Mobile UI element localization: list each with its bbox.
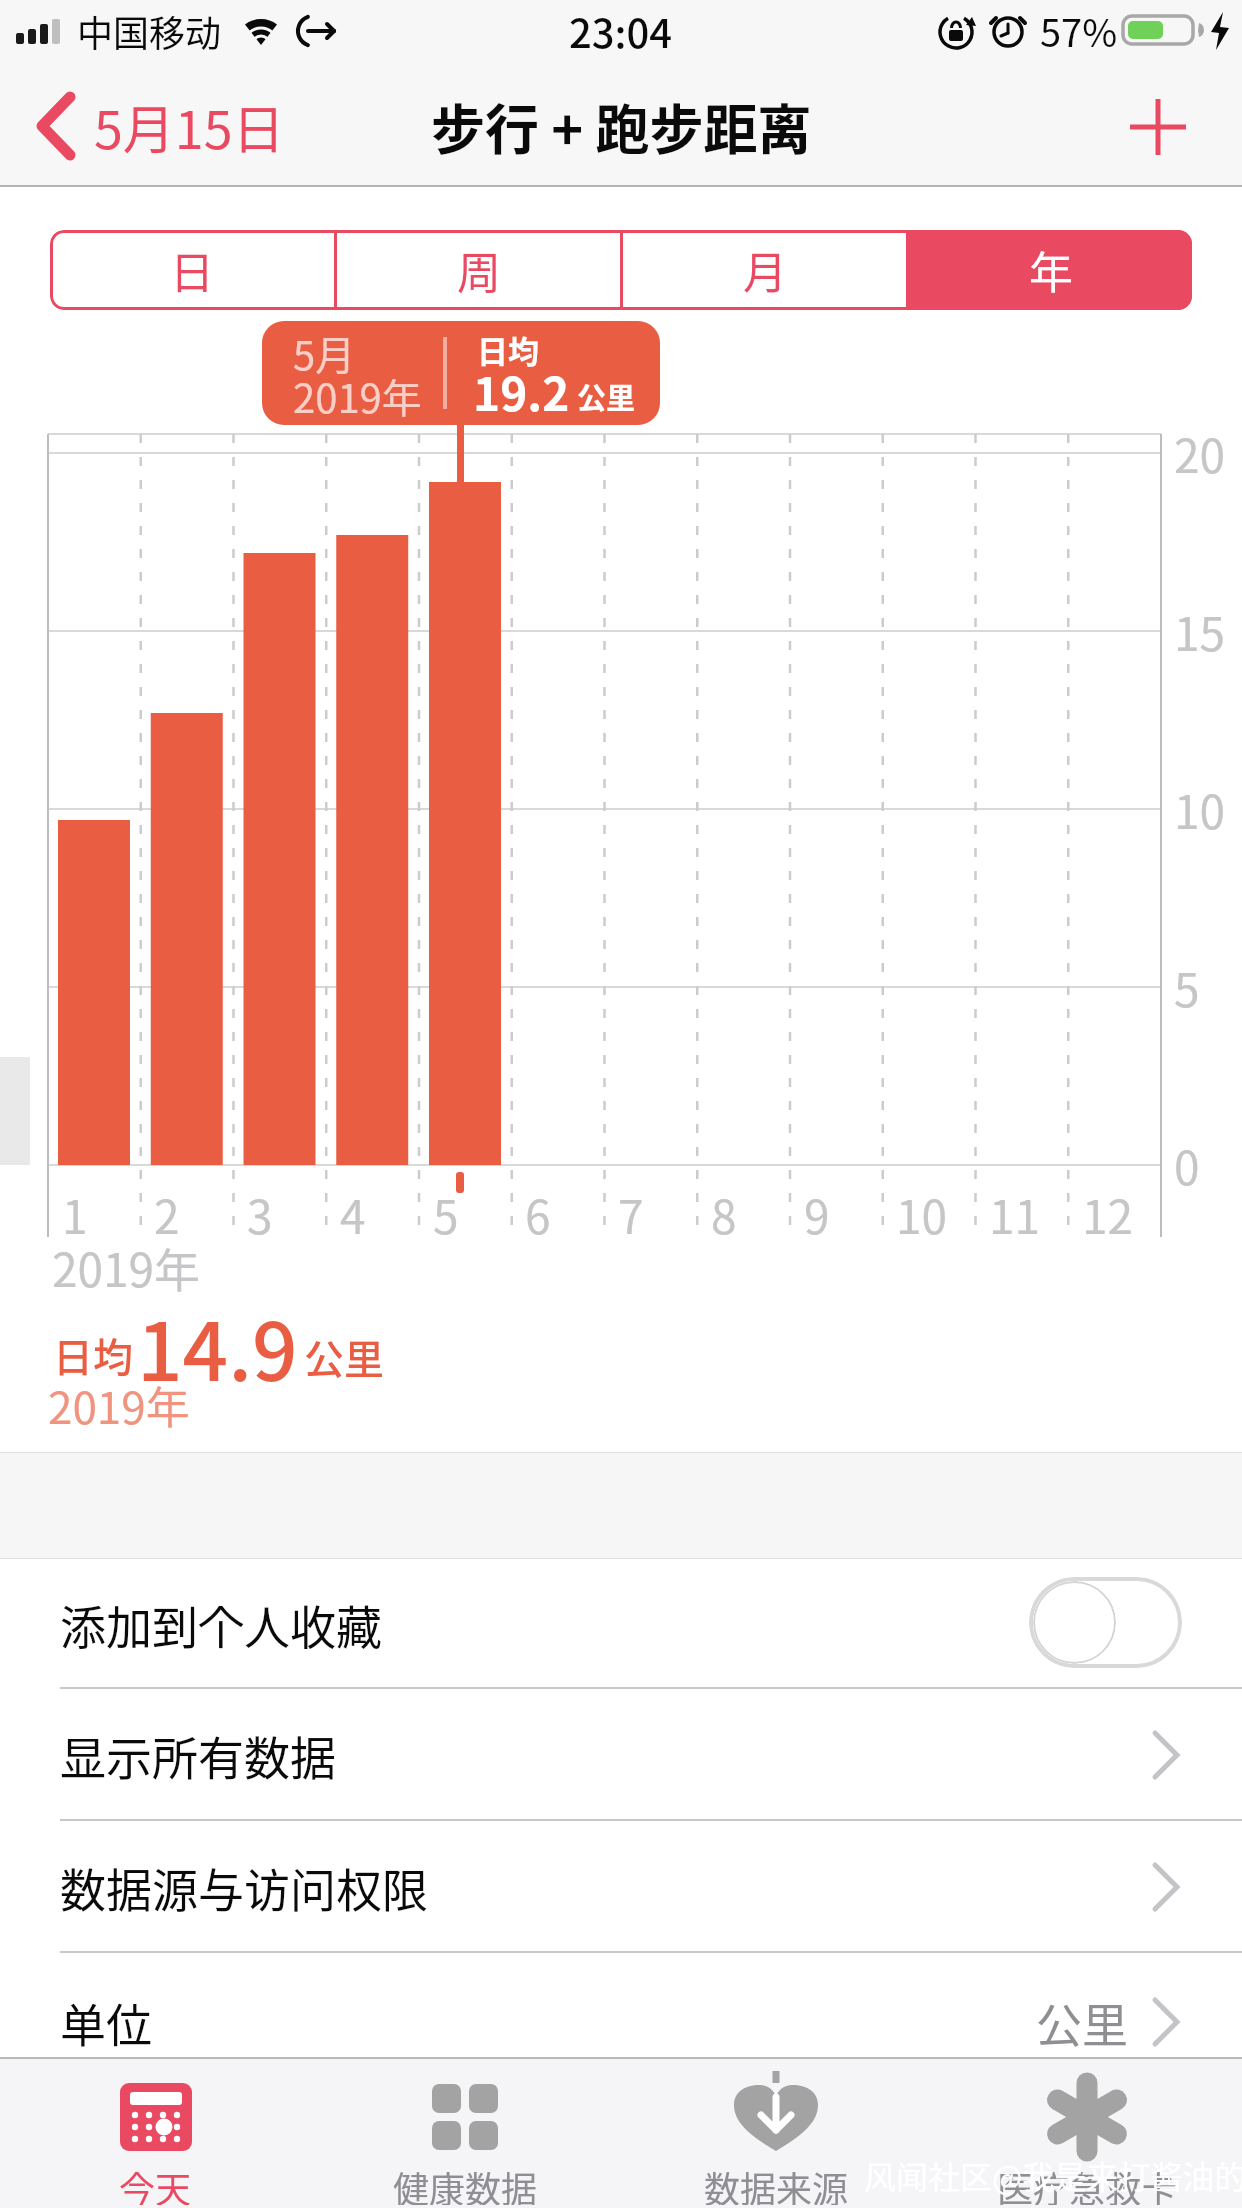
staticText: 数据来源 (704, 2161, 849, 2205)
staticText: 日 (170, 238, 214, 302)
staticText: 14.9 (137, 1288, 298, 1404)
button[interactable] (0, 1953, 1242, 2057)
staticText: 4 (340, 1181, 366, 1248)
staticText: 2019年 (48, 1373, 190, 1437)
staticText: 风闻社区@我是来打酱油的 (864, 2152, 1242, 2198)
button[interactable]: 健康数据 (345, 2059, 585, 2208)
staticText: 5月 (293, 324, 356, 382)
button[interactable] (1110, 95, 1210, 159)
staticText: 23:04 (569, 2, 673, 60)
staticText: 10 (1174, 776, 1226, 843)
staticText: 5月15日 (94, 89, 285, 164)
staticText: 20 (1174, 420, 1226, 487)
staticText: 健康数据 (393, 2161, 538, 2205)
staticText: 3 (247, 1181, 273, 1248)
staticText: 公里 (577, 375, 636, 417)
staticText: 1 (62, 1181, 88, 1248)
staticText: 2019年 (52, 1234, 201, 1301)
staticText: 9 (804, 1181, 830, 1248)
button[interactable] (0, 1689, 1242, 1820)
staticText: 日均 (53, 1326, 133, 1384)
staticText: 年 (1029, 238, 1073, 302)
staticText: 8 (711, 1181, 737, 1248)
staticText: 15 (1174, 598, 1226, 665)
button[interactable]: 周 (337, 230, 620, 310)
button[interactable]: 医疗急救卡 (967, 2059, 1207, 2208)
staticText: 中国移动 (77, 5, 222, 57)
button[interactable]: 数据来源 (656, 2059, 896, 2208)
staticText: 0 (1174, 1132, 1200, 1199)
button[interactable]: 年 (909, 230, 1192, 310)
staticText: 2019年 (293, 367, 422, 425)
staticText: 医疗急救卡 (997, 2161, 1178, 2205)
staticText: 7 (618, 1181, 644, 1248)
staticText: 月 (743, 238, 787, 302)
button[interactable]: 月 (623, 230, 906, 310)
staticText: 显示所有数据 (60, 1722, 336, 1789)
staticText: 今天 (119, 2161, 192, 2205)
staticText: 12 (1082, 1181, 1134, 1248)
staticText: 步行 + 跑步距离 (431, 87, 812, 165)
staticText: 5 (433, 1181, 459, 1248)
button[interactable]: 今天 (35, 2059, 275, 2208)
staticText: 6 (525, 1181, 551, 1248)
button[interactable] (0, 1821, 1242, 1952)
staticText: 11 (989, 1181, 1041, 1248)
staticText: 数据源与访问权限 (60, 1854, 428, 1921)
staticText: 5 (1174, 954, 1200, 1021)
staticText: 单位 (60, 1989, 152, 2056)
staticText: 日均 (477, 327, 539, 372)
button[interactable] (0, 1559, 1242, 1688)
staticText: 公里 (304, 1328, 384, 1386)
button[interactable]: 5月15日 (24, 86, 304, 166)
button[interactable]: 日 (50, 230, 334, 310)
staticText: 19.2 (473, 358, 570, 425)
button[interactable] (1029, 1577, 1182, 1668)
staticText: 57% (1040, 3, 1118, 58)
staticText: 添加到个人收藏 (60, 1591, 382, 1658)
staticText: 周 (457, 238, 501, 302)
staticText: 10 (896, 1181, 948, 1248)
staticText: 2 (154, 1181, 180, 1248)
staticText: 公里 (1036, 1989, 1128, 2056)
